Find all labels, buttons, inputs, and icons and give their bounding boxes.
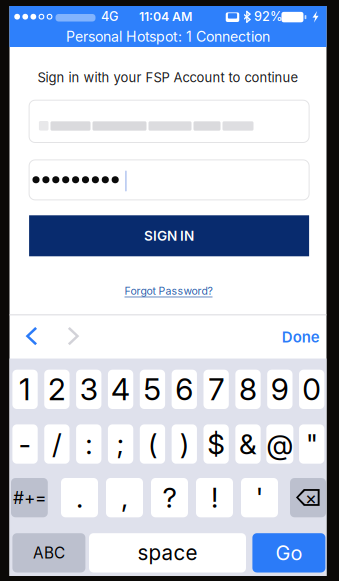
staticText: × bbox=[305, 487, 317, 509]
button[interactable]: ' bbox=[241, 478, 278, 517]
button[interactable]: ! bbox=[196, 478, 233, 517]
staticText: - bbox=[19, 427, 32, 461]
button[interactable]: $ bbox=[203, 424, 229, 464]
staticText: ! bbox=[211, 481, 218, 515]
button[interactable]: : bbox=[76, 424, 101, 464]
button[interactable]: 1 bbox=[12, 370, 38, 409]
staticText: 92% bbox=[254, 9, 283, 24]
button[interactable]: 9 bbox=[267, 370, 292, 409]
staticText: 11:04 AM bbox=[139, 9, 192, 24]
staticText: @ bbox=[266, 427, 293, 461]
button[interactable]: ; bbox=[108, 424, 133, 464]
staticText: . bbox=[76, 481, 83, 515]
button[interactable]: - bbox=[12, 424, 38, 464]
button[interactable]: 7 bbox=[203, 370, 229, 409]
staticText: / bbox=[52, 427, 62, 461]
staticText: " bbox=[306, 427, 318, 461]
staticText: 6 bbox=[175, 371, 193, 407]
button[interactable]: ) bbox=[172, 424, 197, 464]
staticText: 0 bbox=[302, 371, 321, 407]
staticText: 5 bbox=[143, 371, 161, 407]
button[interactable]: 3 bbox=[76, 370, 101, 409]
button[interactable]: ( bbox=[140, 424, 165, 464]
staticText: ' bbox=[255, 481, 263, 515]
button[interactable]: 6 bbox=[172, 370, 197, 409]
button[interactable]: / bbox=[44, 424, 69, 464]
staticText: ) bbox=[180, 427, 189, 461]
button[interactable]: Forgot Password? bbox=[117, 282, 219, 300]
button[interactable]: , bbox=[106, 478, 143, 517]
staticText: 1 bbox=[19, 371, 31, 407]
button[interactable]: Next field bbox=[68, 327, 80, 345]
staticText: SIGN IN bbox=[144, 228, 194, 244]
button[interactable]: Done bbox=[279, 328, 322, 346]
staticText: $ bbox=[207, 427, 225, 461]
button[interactable]: Previous field bbox=[26, 327, 38, 345]
button[interactable]: ABC bbox=[12, 533, 85, 572]
button[interactable]: " bbox=[299, 424, 324, 464]
staticText: 4 bbox=[111, 371, 130, 407]
button[interactable]: 8 bbox=[235, 370, 261, 409]
staticText: Forgot Password? bbox=[124, 285, 212, 297]
staticText: Sign in with your FSP Account to continu… bbox=[37, 70, 298, 85]
button[interactable]: @ bbox=[266, 424, 293, 464]
button[interactable]: 0 bbox=[299, 370, 324, 409]
button[interactable]: space bbox=[89, 533, 246, 572]
button[interactable]: & bbox=[235, 424, 261, 464]
staticText: ; bbox=[117, 427, 125, 461]
button[interactable]: SIGN IN bbox=[29, 215, 309, 256]
button[interactable]: 4 bbox=[108, 370, 133, 409]
staticText: 2 bbox=[48, 371, 66, 407]
staticText: 3 bbox=[80, 371, 98, 407]
button[interactable]: 2 bbox=[44, 370, 69, 409]
staticText: 4G bbox=[101, 9, 118, 24]
staticText: 7 bbox=[208, 371, 224, 407]
staticText: Go bbox=[275, 541, 302, 565]
staticText: ( bbox=[148, 427, 157, 461]
button[interactable]: #+= bbox=[11, 478, 48, 517]
staticText: , bbox=[121, 481, 128, 515]
staticText: Done bbox=[282, 328, 320, 346]
staticText: ? bbox=[162, 481, 176, 515]
button[interactable]: . bbox=[61, 478, 98, 517]
staticText: : bbox=[85, 427, 92, 461]
staticText: ABC bbox=[33, 544, 65, 562]
button[interactable]: Delete bbox=[290, 478, 326, 517]
button[interactable]: Go bbox=[252, 533, 325, 572]
button[interactable]: ? bbox=[151, 478, 188, 517]
staticText: space bbox=[137, 540, 197, 565]
staticText: & bbox=[239, 427, 257, 461]
button[interactable]: 5 bbox=[140, 370, 165, 409]
staticText: 8 bbox=[239, 371, 257, 407]
staticText: Personal Hotspot: 1 Connection bbox=[66, 28, 270, 45]
staticText: #+= bbox=[13, 487, 46, 508]
staticText: 9 bbox=[271, 371, 289, 407]
